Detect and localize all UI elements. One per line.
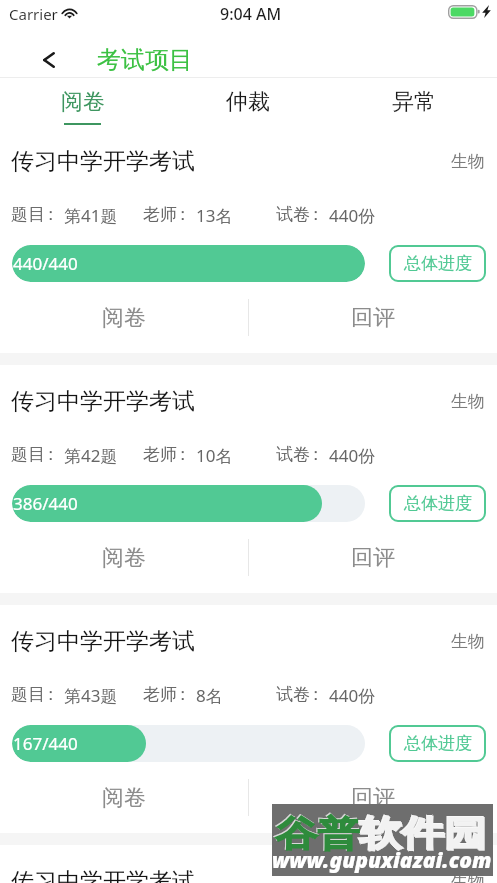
staticText: 题目 [11,444,45,465]
staticText: 传习中学开学考试 [11,387,195,416]
staticText: 生物 [451,391,485,412]
button[interactable]: 阅卷 [0,78,165,125]
staticText: 生物 [451,151,485,172]
button[interactable]: 回评 [249,779,497,816]
button[interactable]: 阅卷 [0,299,248,336]
staticText: 8名 [196,684,223,707]
staticText: 阅卷 [102,544,146,572]
staticText: ： [307,204,324,225]
staticText: 9:04 AM [220,3,282,25]
staticText: 440/440 [13,252,78,275]
staticText: 生物 [451,631,485,652]
staticText: 软件园 [359,811,486,855]
button[interactable]: Back [26,42,72,77]
staticText: www.gupuxiazai.com [272,846,492,875]
button[interactable]: 阅卷 [0,539,248,576]
button[interactable]: 总体进度 [389,485,486,522]
staticText: 老师 [143,204,177,225]
button[interactable]: 总体进度 [389,245,486,282]
staticText: 阅卷 [61,88,105,116]
staticText: 阅卷 [102,784,146,812]
staticText: 167/440 [13,732,78,755]
staticText: 试卷 [276,684,310,705]
button[interactable]: 阅卷 [0,779,248,816]
button[interactable]: 总体进度 [389,725,486,762]
staticText: 传习中学开学考试 [11,147,195,176]
staticText: 10名 [196,444,233,467]
staticText: 总体进度 [404,733,472,754]
staticText: 异常 [392,88,436,116]
staticText: 试卷 [276,204,310,225]
staticText: 老师 [143,684,177,705]
staticText: ： [174,204,191,225]
staticText: 谷普 [274,811,359,855]
button[interactable]: 回评 [249,539,497,576]
staticText: 回评 [351,544,395,572]
staticText: 题目 [11,684,45,705]
staticText: 回评 [351,784,395,812]
staticText: 第43题 [64,684,118,707]
staticText: 生物 [451,871,485,883]
staticText: 总体进度 [404,253,472,274]
staticText: 仲裁 [226,88,270,116]
staticText: 传习中学开学考试 [11,867,195,883]
staticText: 老师 [143,444,177,465]
staticText: 第42题 [64,444,118,467]
staticText: ： [174,444,191,465]
staticText: 386/440 [13,492,78,515]
staticText: ： [307,684,324,705]
staticText: 13名 [196,204,233,227]
staticText: ： [174,684,191,705]
staticText: 谷普 [275,812,360,856]
button[interactable]: 仲裁 [165,78,331,125]
button[interactable]: 回评 [249,299,497,336]
staticText: 题目 [11,204,45,225]
staticText: 回评 [351,304,395,332]
staticText: 第41题 [64,204,118,227]
staticText: 总体进度 [404,493,472,514]
staticText: ： [42,444,59,465]
staticText: 试卷 [276,444,310,465]
staticText: 软件园 [360,812,487,856]
staticText: 440份 [329,684,376,707]
staticText: 考试项目 [97,45,193,75]
staticText: ： [42,684,59,705]
button[interactable]: 异常 [331,78,497,125]
staticText: 440份 [329,444,376,467]
staticText: 传习中学开学考试 [11,627,195,656]
staticText: Carrier [9,4,58,24]
staticText: 440份 [329,204,376,227]
staticText: ： [42,204,59,225]
staticText: 阅卷 [102,304,146,332]
staticText: ： [307,444,324,465]
